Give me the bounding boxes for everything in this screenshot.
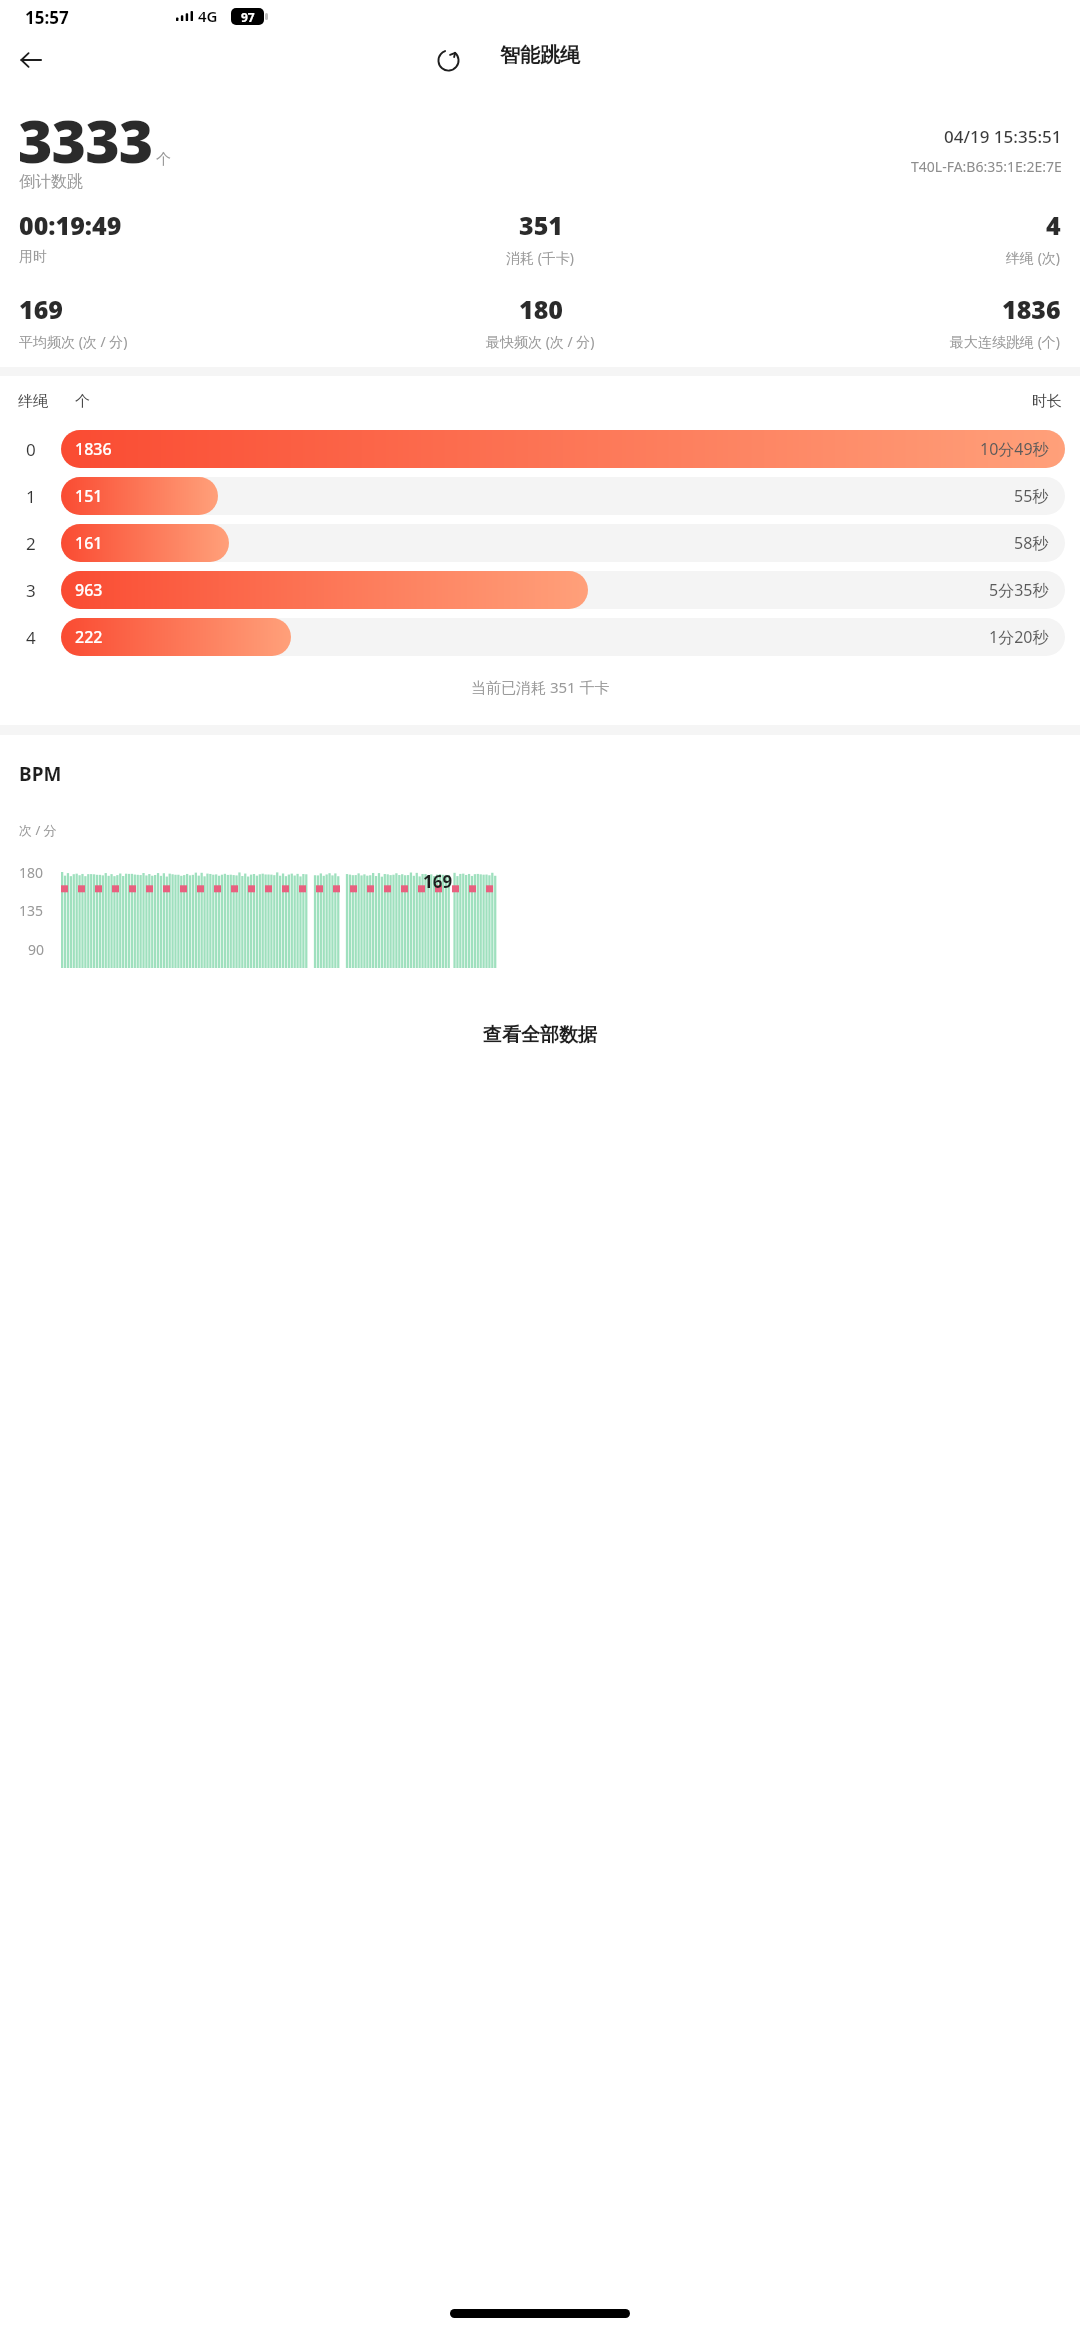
staticText: 180 xyxy=(519,292,563,326)
button[interactable]: 1 xyxy=(0,477,1080,515)
staticText: T40L-FA:B6:35:1E:2E:7E xyxy=(911,157,1062,176)
staticText: 最大连续跳绳 (个) xyxy=(950,332,1061,351)
staticText: 查看全部数据 xyxy=(483,1023,597,1047)
button[interactable]: 查看全部数据 xyxy=(0,1013,1080,1057)
staticText: 1836 xyxy=(1002,292,1061,326)
staticText: 4G xyxy=(198,6,218,26)
staticText: 智能跳绳 xyxy=(500,43,580,68)
staticText: 最快频次 (次 / 分) xyxy=(486,332,595,351)
staticText: 222 xyxy=(75,626,103,648)
staticText: 4 xyxy=(26,626,36,649)
staticText: 3 xyxy=(26,579,36,602)
staticText: 10分49秒 xyxy=(980,438,1049,460)
staticText: 时长 xyxy=(1032,392,1062,411)
staticText: 1 xyxy=(26,485,36,508)
staticText: 169 xyxy=(19,292,63,326)
staticText: BPM xyxy=(19,761,62,787)
staticText: 55秒 xyxy=(1014,485,1049,507)
staticText: 351 xyxy=(519,208,563,242)
staticText: 次 / 分 xyxy=(19,821,57,839)
staticText: 1836 xyxy=(75,438,112,460)
staticText: 135 xyxy=(19,901,44,920)
staticText: 倒计数跳 xyxy=(19,172,83,192)
staticText: 平均频次 (次 / 分) xyxy=(19,332,128,351)
staticText: 169 xyxy=(423,870,453,893)
staticText: 151 xyxy=(75,485,103,507)
staticText: 5分35秒 xyxy=(989,579,1049,601)
staticText: 90 xyxy=(28,940,45,959)
staticText: 04/19 15:35:51 xyxy=(944,125,1062,148)
staticText: 2 xyxy=(26,532,36,555)
staticText: 消耗 (千卡) xyxy=(506,248,575,267)
staticText: 当前已消耗 351 千卡 xyxy=(471,677,610,697)
staticText: 58秒 xyxy=(1014,532,1049,554)
staticText: 161 xyxy=(75,532,103,554)
staticText: 用时 xyxy=(19,248,47,266)
staticText: 180 xyxy=(19,863,44,882)
staticText: 绊绳 xyxy=(18,392,48,411)
staticText: 个 xyxy=(156,150,171,169)
staticText: 963 xyxy=(75,579,103,601)
staticText: 97 xyxy=(241,9,255,25)
button[interactable]: Refresh xyxy=(425,37,471,83)
staticText: 4 xyxy=(1046,208,1061,242)
staticText: 3333 xyxy=(18,100,153,180)
button[interactable]: 0 xyxy=(0,430,1080,468)
staticText: 1分20秒 xyxy=(989,626,1049,648)
staticText: 个 xyxy=(75,392,90,411)
button[interactable]: Back xyxy=(8,37,54,83)
staticText: 绊绳 (次) xyxy=(1006,248,1061,267)
staticText: 00:19:49 xyxy=(19,208,122,242)
button[interactable]: 2 xyxy=(0,524,1080,562)
button[interactable]: 3 xyxy=(0,571,1080,609)
button[interactable]: 4 xyxy=(0,618,1080,656)
staticText: 15:57 xyxy=(25,6,69,29)
staticText: 0 xyxy=(26,438,36,461)
